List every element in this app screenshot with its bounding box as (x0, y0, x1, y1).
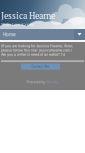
button[interactable]: Weebly (46, 80, 58, 84)
button[interactable]: Contact Me (21, 64, 60, 70)
staticText: Jessica Hearne (1, 10, 55, 21)
button[interactable]: Home (0, 29, 20, 40)
staticText: Weebly (46, 80, 58, 84)
staticText: Are you a writer in need of an editor? I… (1, 52, 65, 57)
staticText: please follow this link: jessicahearne.c… (1, 48, 72, 52)
staticText: Home (3, 32, 16, 37)
button[interactable]: Menu (74, 29, 85, 40)
staticText: Powered by (26, 80, 45, 84)
staticText: (If you are looking for Jessica Hearne, … (1, 44, 73, 48)
staticText: Write. Love. Create. (1, 21, 35, 27)
staticText: Contact Me (31, 65, 49, 68)
